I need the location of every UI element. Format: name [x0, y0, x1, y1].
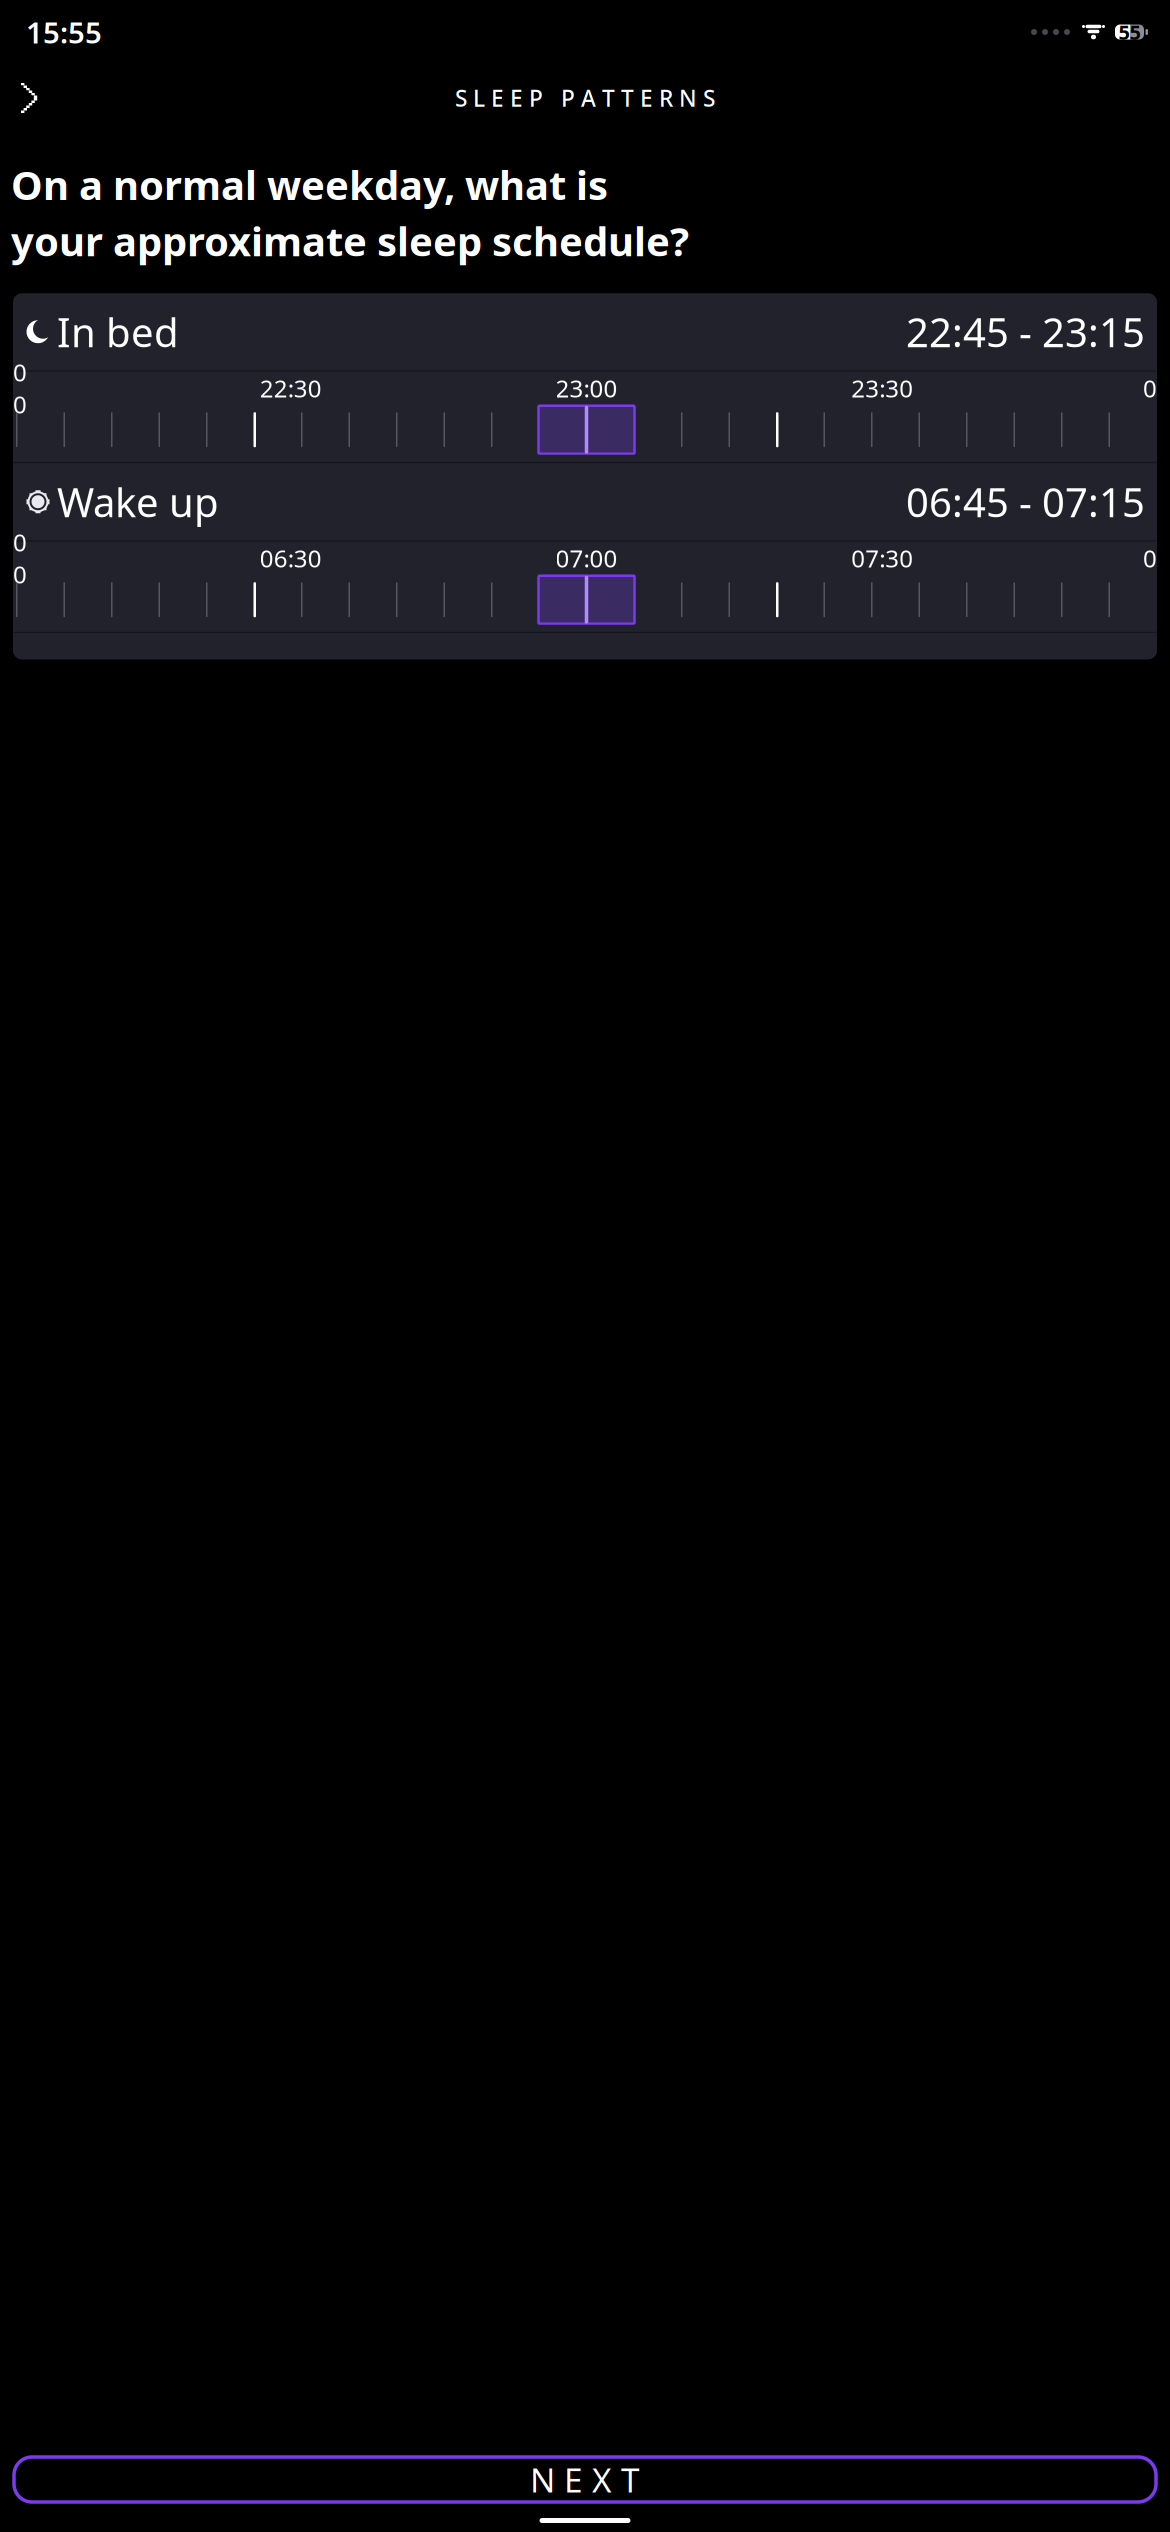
staticText: 23:30: [851, 372, 913, 404]
staticText: In bed: [57, 305, 179, 358]
staticText: 23:00: [555, 372, 617, 404]
staticText: 0: [1143, 542, 1157, 574]
staticText: 22:45 - 23:15: [906, 305, 1145, 358]
staticText: 0: [1143, 372, 1157, 404]
staticText: 22:30: [260, 372, 322, 404]
button[interactable]: N E X T: [14, 2457, 1156, 2502]
staticText: Wake up: [57, 475, 219, 528]
staticText: your approximate sleep schedule?: [11, 214, 689, 267]
staticText: 00: [13, 356, 27, 420]
staticText: 06:30: [260, 542, 322, 574]
button[interactable]: Back: [6, 74, 54, 122]
staticText: 00: [13, 526, 27, 590]
staticText: 07:30: [851, 542, 913, 574]
staticText: 06:45 - 07:15: [906, 475, 1145, 528]
staticText: N E X T: [530, 2457, 640, 2502]
staticText: 15:55: [26, 12, 102, 51]
staticText: On a normal weekday, what is: [11, 158, 608, 211]
staticText: S L E E P P A T T E R N S: [455, 83, 715, 113]
staticText: 07:00: [555, 542, 617, 574]
staticText: 55: [1118, 19, 1140, 45]
